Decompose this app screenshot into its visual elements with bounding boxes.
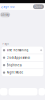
staticText: Night Mode — [6, 71, 23, 74]
staticText: Time Remaining — [6, 48, 28, 52]
button[interactable]: Night Mode — [2, 69, 43, 76]
button[interactable]: Clock Appearance — [2, 54, 43, 61]
staticText: Brightness — [6, 63, 21, 67]
staticText: Sign out — [3, 5, 15, 8]
staticText: Library — [1, 13, 9, 16]
staticText: Done — [34, 5, 42, 8]
button[interactable]: Library — [0, 12, 10, 17]
staticText: Clock Appearance — [6, 56, 30, 59]
button[interactable]: ‹ — [0, 3, 15, 11]
staticText: Page — [2, 42, 9, 45]
button[interactable]: Done — [33, 4, 44, 9]
button[interactable]: Brightness — [2, 62, 43, 69]
button[interactable]: Time Remaining — [2, 47, 43, 54]
staticText: ‹ — [1, 3, 3, 10]
